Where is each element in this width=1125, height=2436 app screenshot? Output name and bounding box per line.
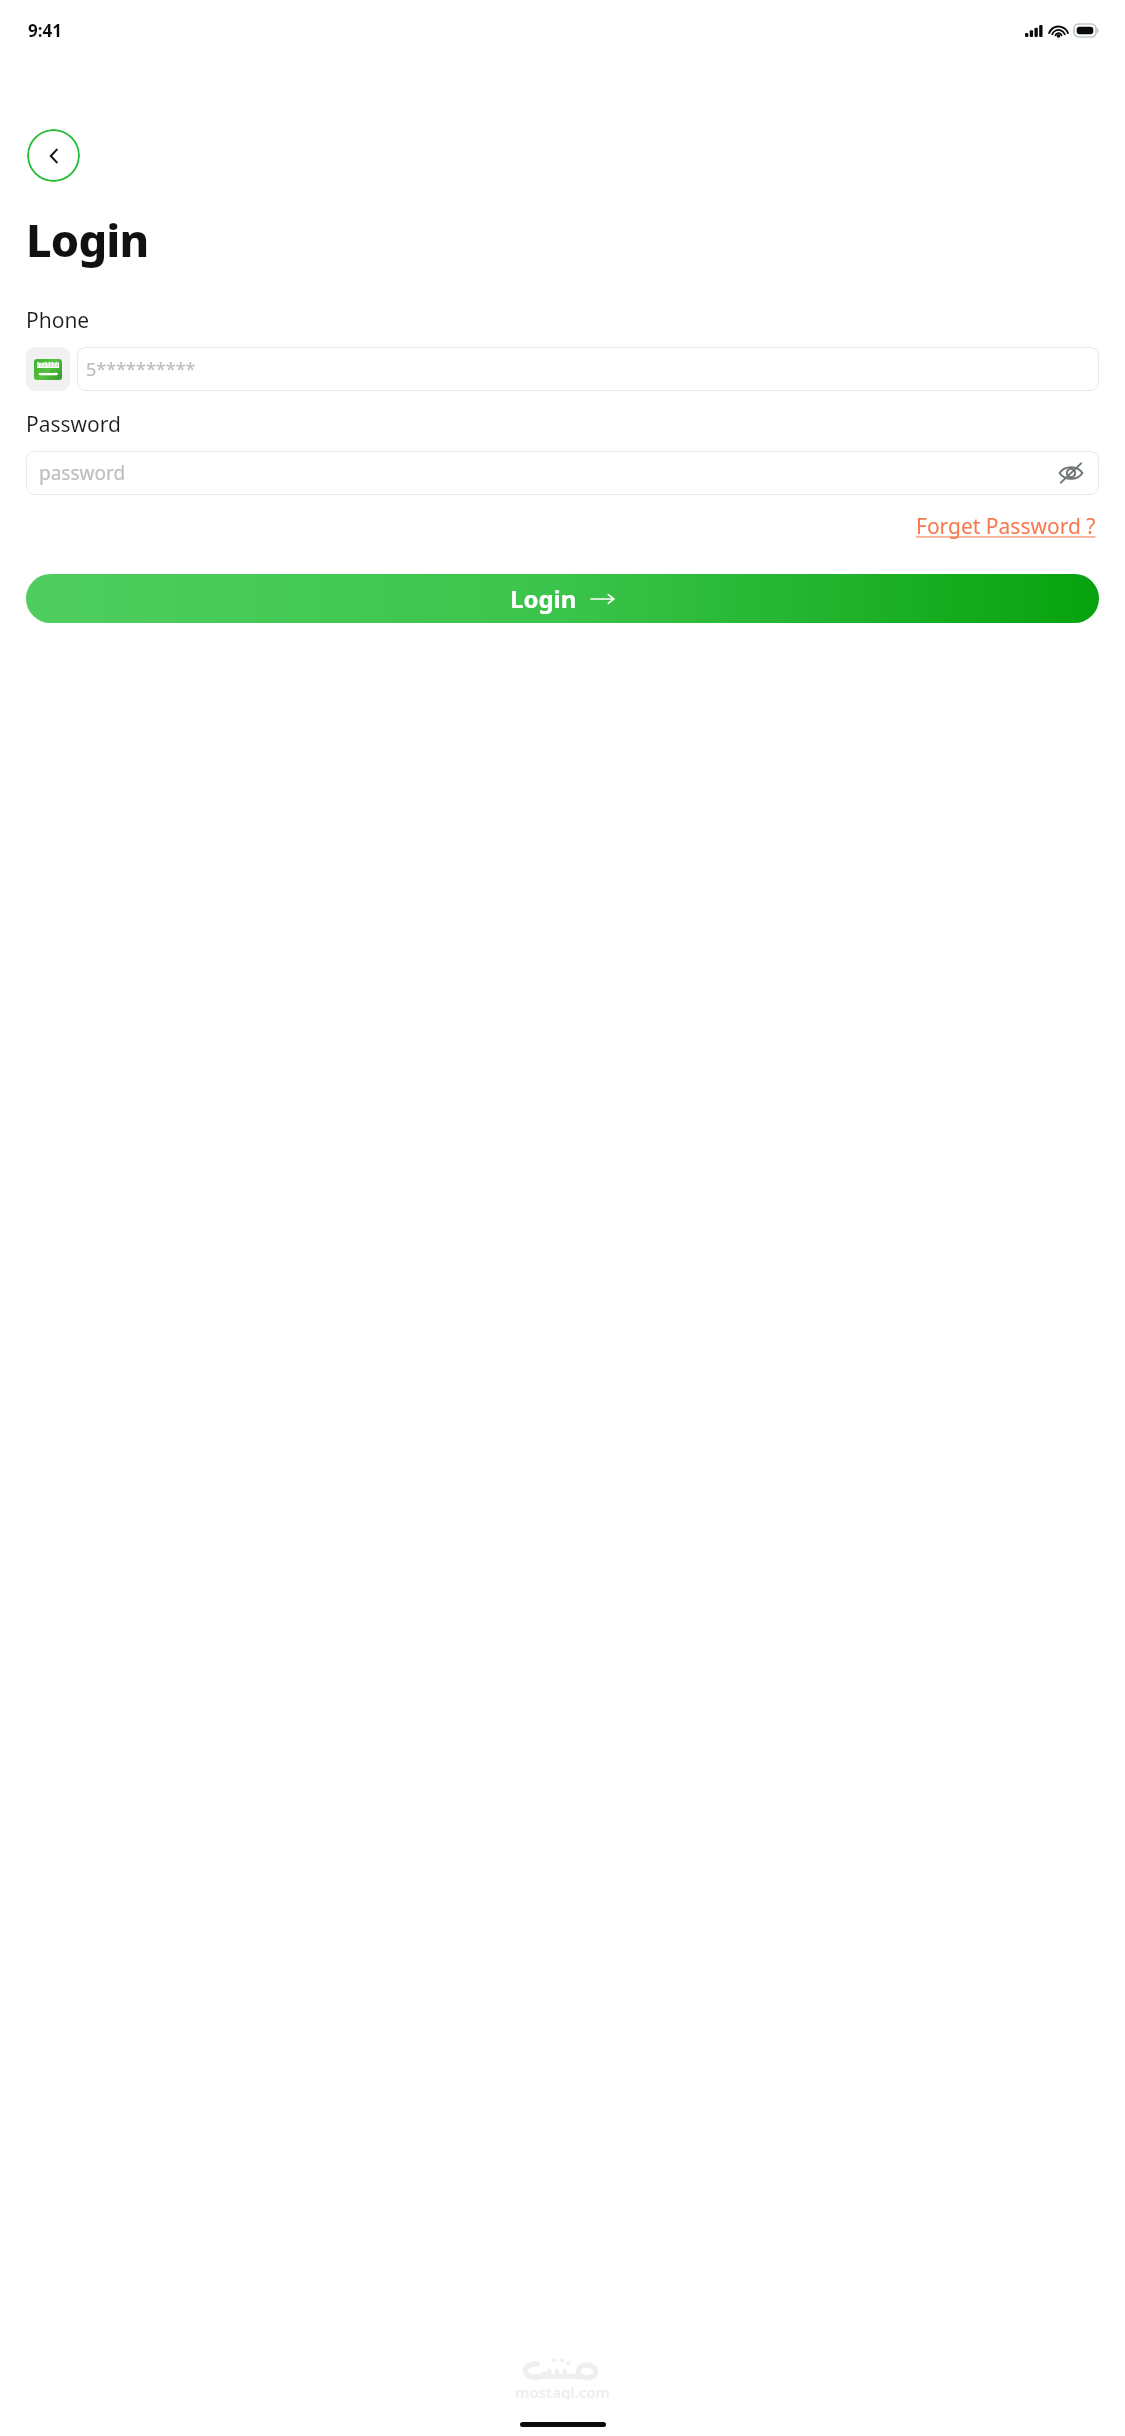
button[interactable]: Back bbox=[27, 129, 80, 182]
staticText: Login bbox=[510, 582, 577, 615]
staticText: 5********** bbox=[86, 357, 196, 382]
button[interactable]: Forget Password ? bbox=[913, 509, 1099, 544]
staticText: Phone bbox=[26, 306, 90, 335]
staticText: Password bbox=[26, 410, 121, 439]
staticText: Login bbox=[26, 209, 149, 270]
staticText: password bbox=[39, 460, 126, 486]
staticText: mostaql.com bbox=[515, 2382, 610, 2402]
button[interactable]: Login bbox=[26, 574, 1099, 623]
button[interactable]: Show password bbox=[1056, 458, 1086, 488]
staticText: 9:41 bbox=[28, 19, 62, 42]
staticText: Forget Password ? bbox=[916, 512, 1096, 541]
button[interactable]: 5********** bbox=[77, 347, 1099, 391]
button[interactable]: Select country code bbox=[26, 347, 70, 391]
button[interactable]: password bbox=[26, 451, 1099, 495]
